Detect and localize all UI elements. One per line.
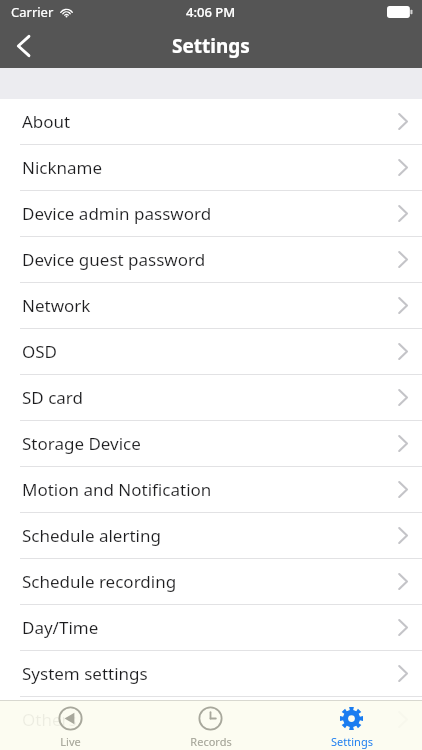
button[interactable]: Storage Device	[0, 421, 422, 466]
button[interactable]: About	[0, 99, 422, 144]
button[interactable]: Records	[140, 701, 281, 750]
staticText: Settings	[172, 33, 250, 59]
button[interactable]: Device admin password	[0, 191, 422, 236]
staticText: Live	[60, 734, 81, 749]
staticText: Schedule recording	[22, 570, 177, 593]
button[interactable]: SD card	[0, 375, 422, 420]
staticText: Device admin password	[22, 202, 212, 225]
staticText: Nickname	[22, 156, 103, 179]
button[interactable]: Schedule recording	[0, 559, 422, 604]
staticText: 4:06 PM	[186, 3, 236, 21]
button[interactable]: Settings	[281, 701, 422, 750]
button[interactable]: Day/Time	[0, 605, 422, 650]
button[interactable]: Motion and Notification	[0, 467, 422, 512]
staticText: Day/Time	[22, 616, 99, 639]
staticText: Others	[22, 708, 77, 731]
staticText: Carrier	[11, 3, 54, 21]
staticText: Network	[22, 294, 91, 317]
button[interactable]: Back	[0, 24, 46, 68]
staticText: Storage Device	[22, 432, 141, 455]
button[interactable]: Network	[0, 283, 422, 328]
button[interactable]: OSD	[0, 329, 422, 374]
staticText: System settings	[22, 662, 148, 685]
button[interactable]: Live	[0, 701, 140, 750]
staticText: Motion and Notification	[22, 478, 212, 501]
button[interactable]: System settings	[0, 651, 422, 696]
button[interactable]: Others	[0, 697, 422, 742]
staticText: Settings	[331, 734, 373, 749]
staticText: About	[22, 110, 71, 133]
staticText: Schedule alerting	[22, 524, 161, 547]
staticText: Records	[190, 734, 232, 749]
button[interactable]: Schedule alerting	[0, 513, 422, 558]
button[interactable]: Nickname	[0, 145, 422, 190]
button[interactable]: Device guest password	[0, 237, 422, 282]
staticText: SD card	[22, 386, 83, 409]
staticText: Device guest password	[22, 248, 206, 271]
staticText: OSD	[22, 340, 58, 363]
